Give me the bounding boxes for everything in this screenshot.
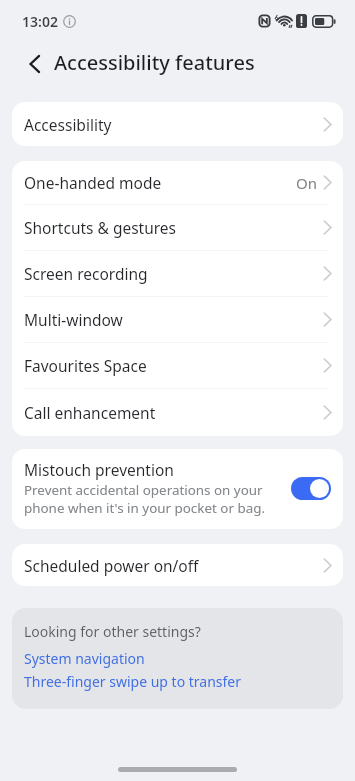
staticText: Accessibility xyxy=(24,114,112,135)
staticText: Favourites Space xyxy=(24,355,147,376)
staticText: Looking for other settings? xyxy=(24,622,201,641)
staticText: System navigation xyxy=(24,649,145,668)
button[interactable]: Scheduled power on/off xyxy=(12,544,343,586)
button[interactable]: Back xyxy=(17,47,51,81)
button[interactable]: One-handed mode xyxy=(12,161,343,204)
button[interactable]: Mistouch prevention toggle xyxy=(291,477,331,500)
staticText: Shortcuts & gestures xyxy=(24,217,177,238)
staticText: Multi-window xyxy=(24,309,123,330)
button[interactable]: Call enhancement xyxy=(12,389,343,436)
button[interactable]: System navigation xyxy=(24,645,145,672)
button[interactable]: Shortcuts & gestures xyxy=(12,205,343,250)
staticText: Scheduled power on/off xyxy=(24,555,199,576)
staticText: One-handed mode xyxy=(24,172,162,193)
staticText: Three-finger swipe up to transfer xyxy=(24,672,242,691)
staticText: Accessibility features xyxy=(54,49,255,76)
staticText: 13:02 xyxy=(22,12,58,31)
staticText: On xyxy=(296,173,317,193)
button[interactable]: Accessibility xyxy=(12,102,343,146)
button[interactable]: Three-finger swipe up to transfer xyxy=(24,672,242,695)
button[interactable]: Mistouch prevention xyxy=(12,449,343,529)
staticText: Call enhancement xyxy=(24,402,156,423)
button[interactable]: Screen recording xyxy=(12,251,343,296)
staticText: Screen recording xyxy=(24,263,148,284)
button[interactable]: Multi-window xyxy=(12,297,343,342)
button[interactable]: Favourites Space xyxy=(12,343,343,388)
staticText: Mistouch prevention xyxy=(24,459,174,480)
staticText: Prevent accidental operations on your ph… xyxy=(24,481,283,517)
